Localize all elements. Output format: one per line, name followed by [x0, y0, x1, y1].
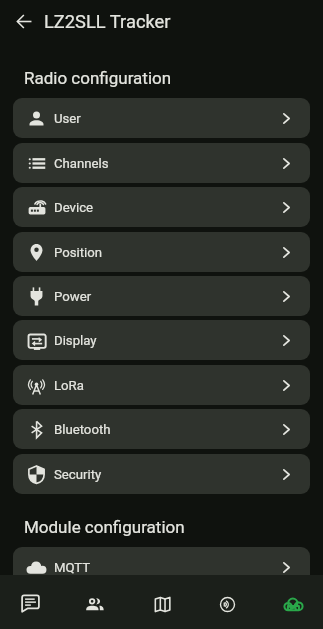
staticText: Radio configuration: [24, 68, 172, 88]
button[interactable]: Device: [13, 187, 310, 227]
staticText: Position: [54, 245, 103, 260]
button[interactable]: MQTT: [13, 547, 310, 587]
button[interactable]: Position: [13, 232, 310, 272]
button[interactable]: Back: [10, 7, 38, 35]
staticText: Channels: [54, 156, 109, 171]
staticText: Security: [54, 467, 102, 482]
button[interactable]: Bluetooth: [13, 409, 310, 449]
staticText: Device: [54, 200, 94, 215]
button[interactable]: Power: [13, 276, 310, 316]
button[interactable]: Channels: [13, 143, 310, 183]
staticText: Module configuration: [24, 517, 185, 537]
button[interactable]: User: [13, 98, 310, 138]
button[interactable]: Contacts: [63, 575, 129, 629]
button[interactable]: LoRa: [13, 365, 310, 405]
staticText: Power: [54, 289, 92, 304]
button[interactable]: Map: [129, 575, 195, 629]
staticText: Display: [54, 333, 97, 348]
staticText: MQTT: [54, 560, 91, 575]
staticText: User: [54, 111, 81, 126]
staticText: Bluetooth: [54, 422, 111, 437]
staticText: LZ2SLL Tracker: [44, 11, 171, 32]
button[interactable]: Display: [13, 320, 310, 360]
button[interactable]: Security: [13, 454, 310, 494]
button[interactable]: Radio: [194, 575, 260, 629]
button[interactable]: Messages: [0, 575, 63, 629]
staticText: LoRa: [54, 378, 84, 393]
button[interactable]: Connected: [260, 575, 323, 629]
